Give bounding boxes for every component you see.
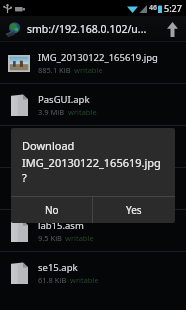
button[interactable]: gold.apk [0, 126, 186, 167]
button[interactable]: Up to parent directory [158, 16, 186, 42]
staticText: lab15.asm [38, 219, 84, 232]
button[interactable]: Yes [93, 197, 175, 223]
staticText: 61.8 KiB [38, 275, 67, 285]
staticText: writable [68, 191, 97, 201]
button[interactable]: PasGUI.apk [0, 84, 186, 125]
staticText: se15.apk [38, 261, 78, 274]
staticText: IMG_20130122_165619.jpg [38, 51, 158, 64]
button[interactable]: IMG_20130122_165619.jpg [0, 42, 186, 83]
button[interactable]: No [11, 197, 92, 223]
staticText: 7.4 MiB [38, 191, 65, 201]
button[interactable]: i2p.apk [0, 168, 186, 209]
staticText: No [45, 203, 59, 217]
staticText: smb://192.168.0.102/u... [27, 22, 158, 36]
staticText: 885.1 KiB [38, 65, 71, 75]
button[interactable]: lab15.asm [0, 210, 186, 251]
staticText: writable [70, 275, 99, 285]
staticText: 3.9 MiB [38, 107, 65, 117]
staticText: PasGUI.apk [38, 93, 90, 106]
staticText: 5:27 [164, 2, 182, 14]
staticText: Yes [126, 203, 142, 217]
staticText: gold.apk [38, 135, 77, 148]
staticText: writable [68, 149, 97, 159]
staticText: 1.1 MiB [38, 149, 65, 159]
staticText: writable [74, 65, 103, 75]
staticText: IMG_20130122_165619.jpg ? [22, 155, 165, 185]
staticText: Download [22, 138, 75, 153]
staticText: 9.5 KiB [38, 233, 62, 243]
button[interactable]: se15.apk [0, 252, 186, 293]
staticText: writable [65, 233, 94, 243]
staticText: writable [68, 107, 97, 117]
staticText: 46 [149, 3, 158, 13]
